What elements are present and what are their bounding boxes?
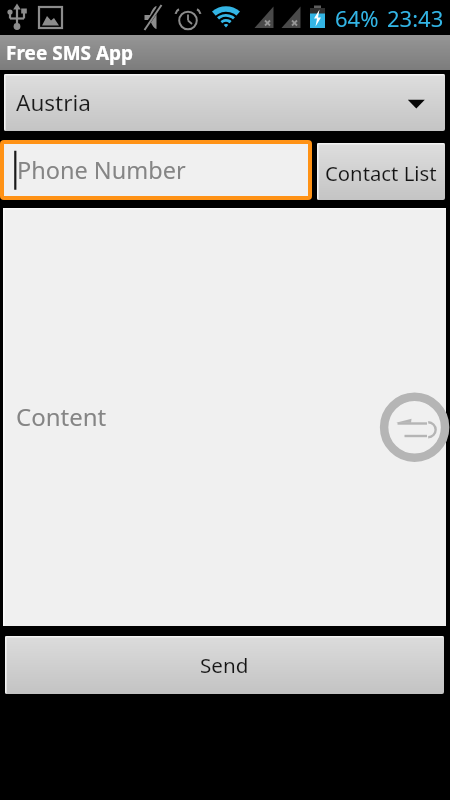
- staticText: 64%: [335, 3, 379, 33]
- other: Enter: [374, 389, 450, 471]
- staticText: Free SMS App: [6, 40, 134, 66]
- button[interactable]: Content: [3, 208, 446, 626]
- staticText: Content: [16, 400, 107, 433]
- button[interactable]: Phone Number: [4, 144, 308, 196]
- staticText: Phone Number: [17, 154, 186, 186]
- staticText: Austria: [16, 87, 91, 118]
- button[interactable]: Austria: [4, 74, 445, 131]
- staticText: Contact List: [325, 159, 437, 187]
- button[interactable]: Send: [5, 636, 444, 694]
- staticText: Send: [200, 651, 249, 679]
- staticText: 23:43: [387, 3, 444, 33]
- button[interactable]: Contact List: [317, 143, 445, 200]
